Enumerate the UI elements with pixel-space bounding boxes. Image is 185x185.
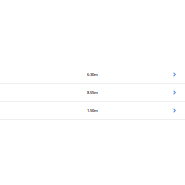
button[interactable]: 8.55m bbox=[0, 84, 185, 101]
button[interactable]: 1.50m bbox=[0, 102, 185, 119]
staticText: 6.30m bbox=[87, 72, 98, 77]
staticText: 8.55m bbox=[87, 90, 98, 95]
staticText: 1.50m bbox=[87, 108, 98, 113]
button[interactable]: 6.30m bbox=[0, 66, 185, 83]
